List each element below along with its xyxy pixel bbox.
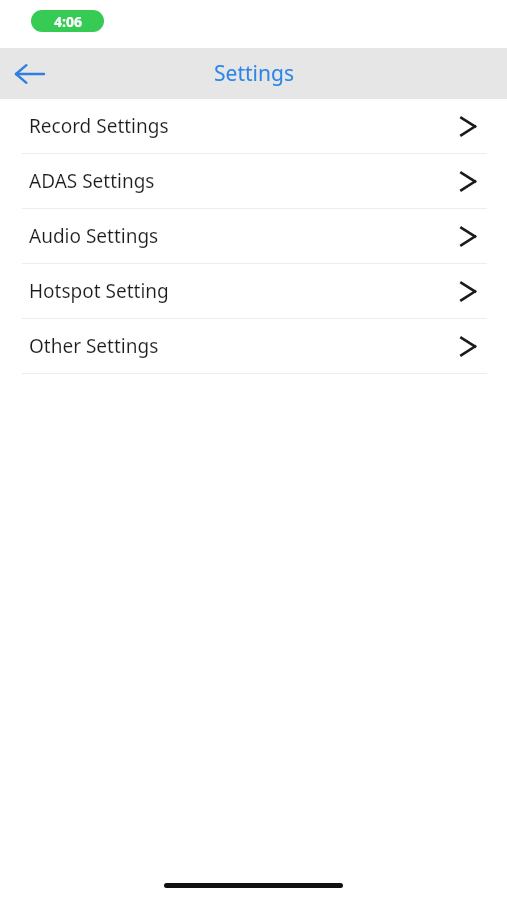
button[interactable]: ADAS Settings [0, 154, 507, 208]
staticText: Audio Settings [29, 223, 159, 249]
staticText: Settings [214, 59, 294, 88]
button[interactable]: Audio Settings [0, 209, 507, 263]
staticText: Hotspot Setting [29, 278, 169, 304]
button[interactable]: Record Settings [0, 99, 507, 153]
staticText: ADAS Settings [29, 168, 155, 194]
button[interactable]: Back [0, 48, 64, 99]
staticText: 4:06 [54, 12, 82, 31]
button[interactable]: Hotspot Setting [0, 264, 507, 318]
staticText: Other Settings [29, 333, 159, 359]
staticText: Record Settings [29, 113, 169, 139]
button[interactable]: Other Settings [0, 319, 507, 373]
